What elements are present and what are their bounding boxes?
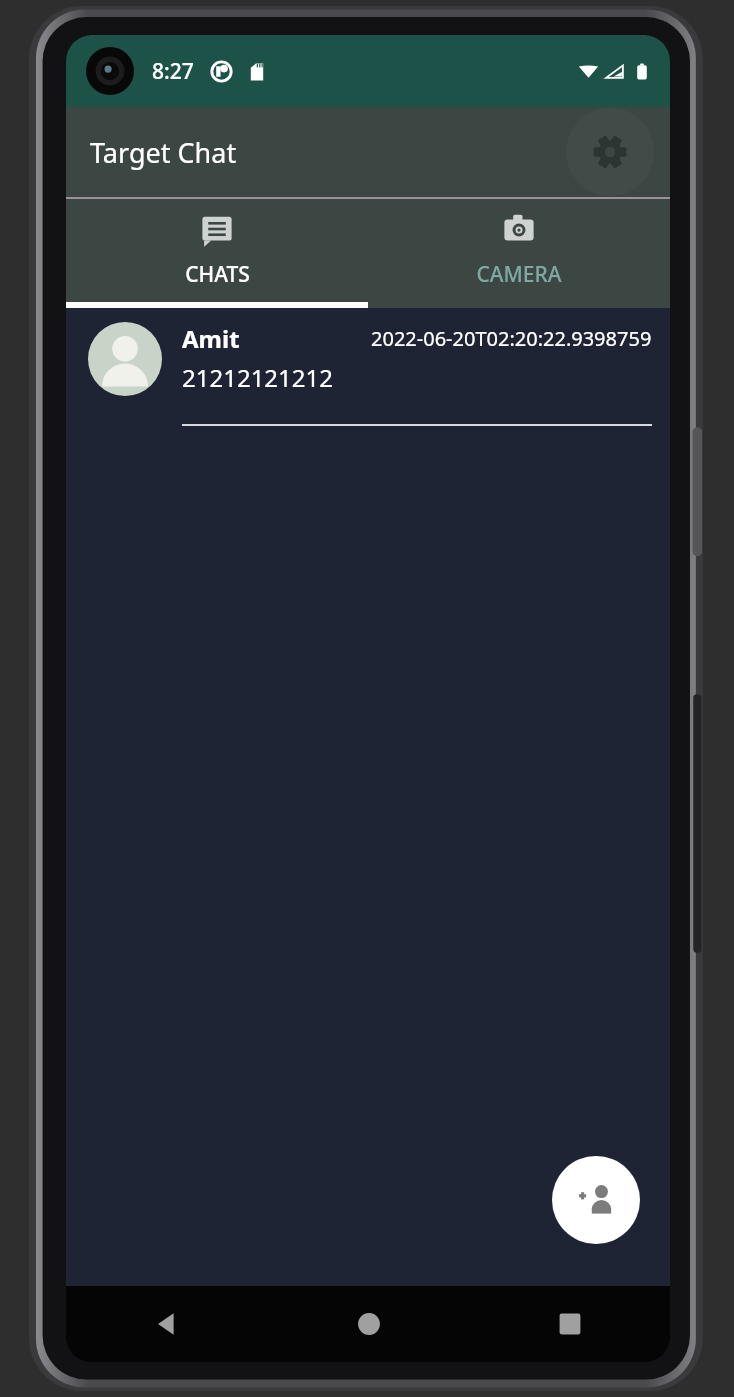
staticText: Amit bbox=[182, 322, 240, 355]
staticText: Target Chat bbox=[90, 134, 237, 171]
staticText: CHATS bbox=[185, 260, 250, 289]
staticText: CAMERA bbox=[476, 260, 562, 289]
button[interactable]: CAMERA bbox=[368, 199, 670, 302]
staticText: 21212121212 bbox=[182, 361, 334, 394]
button[interactable]: Settings bbox=[566, 108, 654, 196]
button[interactable]: Recent apps bbox=[469, 1286, 670, 1362]
button[interactable]: Amit bbox=[66, 308, 670, 426]
button[interactable]: Home bbox=[268, 1286, 469, 1362]
button[interactable]: Back bbox=[66, 1286, 268, 1362]
button[interactable]: CHATS bbox=[66, 199, 368, 302]
staticText: 8:27 bbox=[152, 57, 194, 86]
button[interactable]: Add contact bbox=[552, 1156, 640, 1244]
staticText: 2022-06-20T02:20:22.9398759 bbox=[371, 325, 652, 352]
